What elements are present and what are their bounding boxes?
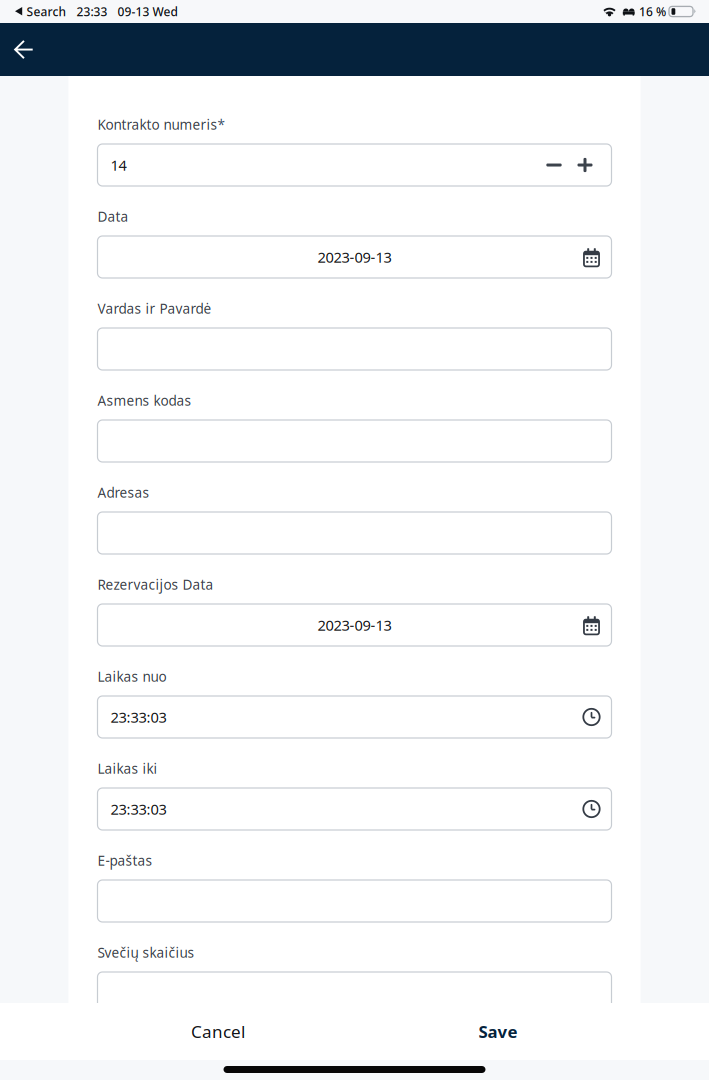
button[interactable]: 2023-09-13 (97, 604, 611, 646)
button[interactable]: 2023-09-13 (97, 236, 611, 278)
staticText: 09-13 Wed (117, 3, 177, 20)
staticText: Cancel (191, 1020, 245, 1043)
staticText: 23:33:03 (110, 707, 166, 727)
staticText: Laikas iki (97, 759, 157, 778)
staticText: Kontrakto numeris (97, 115, 217, 134)
staticText: Adresas (97, 483, 149, 502)
button[interactable]: 23:33:03 (97, 696, 611, 738)
staticText: Save (478, 1020, 517, 1043)
staticText: Asmens kodas (97, 391, 191, 410)
staticText: 2023-09-13 (317, 615, 391, 635)
staticText: 23:33 (76, 3, 107, 20)
staticText: 2023-09-13 (317, 247, 391, 267)
staticText: Svečių skaičius (97, 943, 194, 962)
staticText: 23:33:03 (110, 799, 166, 819)
button[interactable]: Decrease (538, 144, 569, 186)
staticText: Rezervacijos Data (97, 575, 213, 594)
staticText: Search (26, 3, 66, 20)
button[interactable]: Cancel (118, 1003, 318, 1060)
staticText: E-paštas (97, 851, 152, 870)
button[interactable]: Save (398, 1003, 598, 1060)
staticText: 14 (110, 155, 126, 175)
staticText: * (217, 115, 224, 134)
button[interactable]: Increase (569, 144, 600, 186)
staticText: Vardas ir Pavardė (97, 299, 211, 318)
staticText: 16 % (639, 3, 666, 20)
button[interactable]: Back (0, 23, 47, 76)
staticText: Laikas nuo (97, 667, 166, 686)
staticText: Data (97, 207, 128, 226)
button[interactable]: 23:33:03 (97, 788, 611, 830)
